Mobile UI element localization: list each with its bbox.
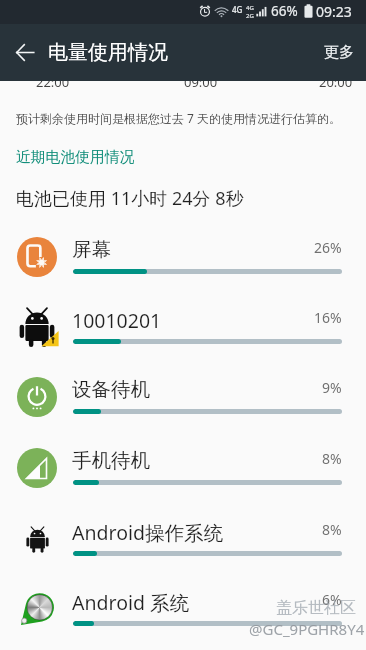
staticText: 4G [232,4,243,15]
button[interactable]: 更多 [312,37,366,68]
button[interactable]: Back [6,33,44,71]
staticText: 09:00 [184,73,218,91]
staticText: Android操作系统 [72,519,223,546]
staticText: 6% [322,590,342,609]
button[interactable]: Android 系统 [0,574,366,644]
staticText: 22:00 [36,73,70,91]
button[interactable]: Android操作系统 [0,504,366,574]
staticText: 8% [322,520,342,539]
button[interactable]: 设备待机 [0,362,366,432]
staticText: Android 系统 [72,589,190,616]
staticText: 09:23 [316,2,352,21]
staticText: 2G [246,12,254,20]
button[interactable]: 10010201 [0,292,366,362]
staticText: 8% [322,449,342,468]
staticText: 近期电池使用情况 [16,148,135,167]
staticText: 手机待机 [72,448,150,473]
staticText: 预计剩余使用时间是根据您过去 7 天的使用情况进行估算的。 [16,110,342,126]
staticText: 20:00 [319,73,353,91]
staticText: 10010201 [72,307,162,334]
staticText: 16% [314,308,342,327]
staticText: 更多 [324,43,354,62]
staticText: 66% [271,2,298,20]
staticText: 盖乐世社区 [276,598,356,618]
button[interactable]: 手机待机 [0,433,366,503]
staticText: 4G [246,4,254,12]
staticText: 电池已使用 11小时 24分 8秒 [16,186,244,211]
staticText: 26% [314,238,342,257]
staticText: 电量使用情况 [48,40,168,65]
button[interactable]: 屏幕 [0,222,366,292]
staticText: @GC_9PGHR8Y4 [249,619,365,639]
staticText: 设备待机 [72,377,150,402]
staticText: 屏幕 [72,237,111,262]
staticText: 9% [322,378,342,397]
